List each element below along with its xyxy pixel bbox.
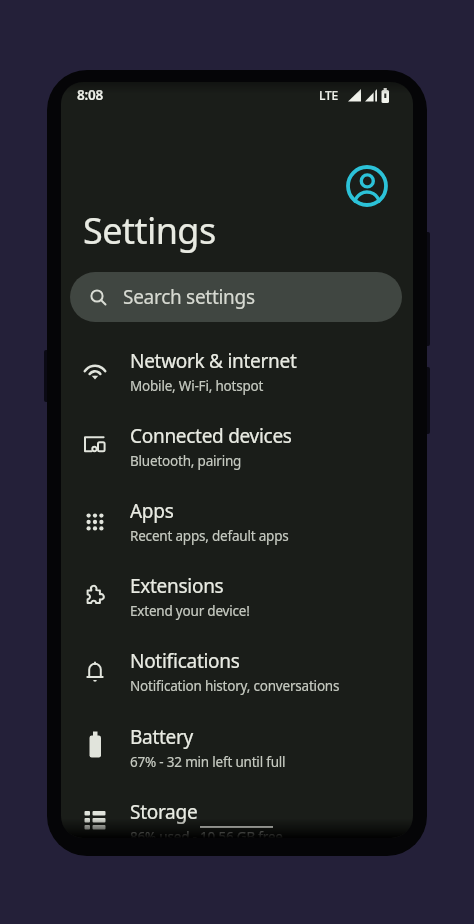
button[interactable]: Search settings: [70, 272, 402, 322]
staticText: Mobile, Wi-Fi, hotspot: [130, 377, 264, 395]
staticText: Storage: [130, 799, 198, 825]
button[interactable]: Apps: [61, 487, 413, 562]
staticText: 67% - 32 min left until full: [130, 753, 286, 771]
staticText: Search settings: [123, 284, 255, 310]
staticText: Recent apps, default apps: [130, 527, 289, 545]
staticText: Network & internet: [130, 348, 297, 374]
staticText: LTE: [319, 87, 339, 103]
staticText: Bluetooth, pairing: [130, 452, 242, 470]
button[interactable]: [347, 166, 387, 206]
staticText: Notification history, conversations: [130, 677, 340, 695]
staticText: 8:08: [77, 86, 104, 104]
staticText: Connected devices: [130, 423, 292, 449]
button[interactable]: Network & internet: [61, 337, 413, 412]
staticText: Settings: [83, 206, 216, 255]
staticText: Battery: [130, 724, 193, 750]
button[interactable]: Battery: [61, 713, 413, 788]
staticText: Extensions: [130, 573, 224, 599]
button[interactable]: Extensions: [61, 562, 413, 637]
staticText: 86% used - 10.56 GB free: [130, 828, 283, 838]
button[interactable]: Notifications: [61, 637, 413, 712]
staticText: Extend your device!: [130, 602, 250, 620]
button[interactable]: Storage: [61, 788, 413, 838]
staticText: Apps: [130, 498, 174, 524]
staticText: Notifications: [130, 648, 240, 674]
button[interactable]: Connected devices: [61, 412, 413, 487]
